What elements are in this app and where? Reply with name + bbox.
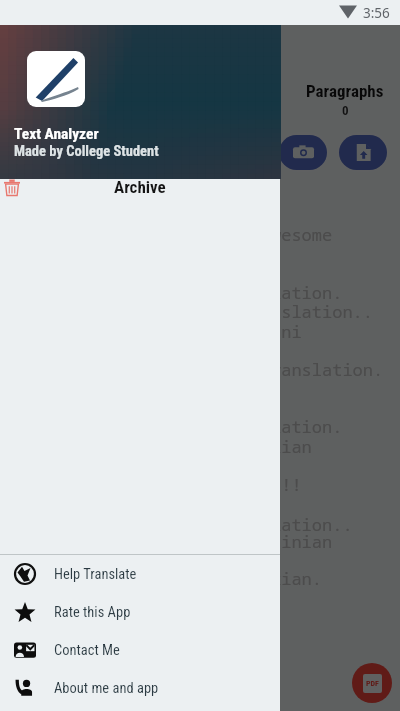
staticText: Hello! I need help with translation. xyxy=(16,358,384,381)
staticText: APKPURE.COM xyxy=(118,660,269,689)
staticText: I speak German and Russian!! xyxy=(16,473,302,496)
staticText: 0 xyxy=(50,103,57,118)
staticText: About me and app xyxy=(54,680,159,697)
staticText: PDF xyxy=(366,679,379,688)
button[interactable]: Contact Me xyxy=(0,631,280,669)
button[interactable]: About me and app xyxy=(0,669,280,707)
staticText: My native language is Romani xyxy=(16,320,302,343)
staticText: Help Translate xyxy=(54,566,137,583)
button[interactable]: Help Translate xyxy=(0,555,280,593)
button[interactable]: Upload a document xyxy=(337,132,389,172)
staticText: Paragraphs xyxy=(306,81,384,101)
button[interactable]: Clear text xyxy=(217,132,269,172)
staticText: Hi! I think this app is awesome xyxy=(16,223,333,246)
staticText: Characters xyxy=(16,81,90,101)
button[interactable]: Rate this App xyxy=(0,593,280,631)
staticText: My native tongue is Slovakian. xyxy=(16,567,322,590)
staticText: My native language is Italian xyxy=(16,435,312,458)
staticText: I really need help w/ translation.. xyxy=(16,300,373,323)
staticText: 3:56 xyxy=(363,4,390,22)
button[interactable]: Scan text with camera xyxy=(277,132,329,172)
button[interactable]: Text Analyzer app icon xyxy=(27,51,85,107)
button[interactable]: Export as PDF xyxy=(352,663,392,703)
staticText: Can I get help with translation. xyxy=(16,281,343,304)
button[interactable]: Paste from clipboard xyxy=(157,132,209,172)
staticText: I need some help w/ translation. xyxy=(16,415,343,438)
staticText: My native language is Ukrainian xyxy=(16,530,333,553)
staticText: Text Analyzer xyxy=(14,125,99,143)
staticText: Made by College Student xyxy=(14,143,159,160)
button[interactable]: Archive xyxy=(0,178,280,210)
staticText: I can assist you w/ translation.. xyxy=(16,513,353,536)
staticText: 0 xyxy=(342,103,349,118)
staticText: Contact Me xyxy=(54,642,120,659)
staticText: Archive xyxy=(114,177,166,197)
staticText: Rate this App xyxy=(54,604,131,621)
